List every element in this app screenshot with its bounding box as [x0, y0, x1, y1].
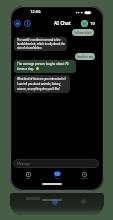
staticText: What kind of facts are you interested in…: [17, 77, 66, 91]
staticText: 10: [90, 21, 95, 27]
button[interactable]: Tell me a fact: [72, 29, 94, 36]
staticText: Chat: [55, 177, 60, 180]
staticText: AI Chat: [54, 20, 71, 26]
button[interactable]: [24, 20, 31, 27]
staticText: Message: [17, 162, 31, 166]
button[interactable]: Facts: [22, 171, 34, 182]
staticText: About: [81, 177, 88, 180]
staticText: Another one: [77, 55, 94, 59]
staticText: The world's smallest mammal is the bumbl…: [17, 38, 65, 50]
button[interactable]: Message: [13, 159, 99, 168]
button[interactable]: About: [78, 171, 90, 182]
button[interactable]: Chat: [51, 171, 63, 182]
staticText: 12:56: [30, 9, 41, 15]
staticText: The average person laughs about 70 times…: [17, 62, 69, 71]
button[interactable]: Another one: [75, 53, 95, 60]
staticText: Facts: [25, 177, 31, 180]
button[interactable]: [14, 20, 21, 27]
staticText: Tell me a fact: [74, 31, 92, 35]
